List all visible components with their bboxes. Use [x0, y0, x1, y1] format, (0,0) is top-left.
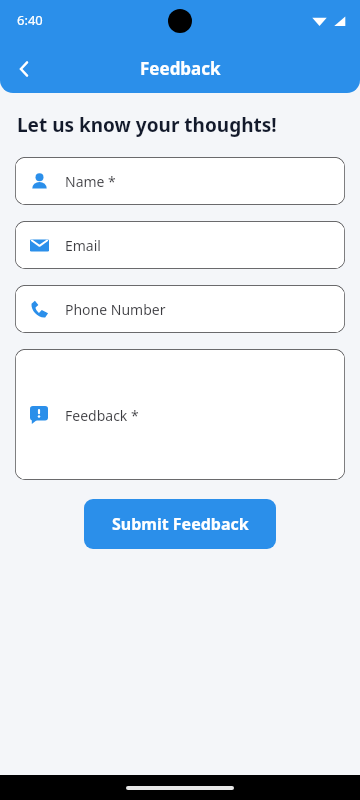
staticText: Let us know your thoughts!	[17, 112, 277, 138]
button[interactable]: Name *	[15, 157, 345, 205]
staticText: Name *	[65, 172, 116, 191]
button[interactable]: Back	[0, 45, 48, 93]
button[interactable]: Feedback *	[15, 349, 345, 480]
staticText: Phone Number	[65, 300, 166, 319]
button[interactable]: Phone Number	[15, 285, 345, 333]
button[interactable]: Email	[15, 221, 345, 269]
staticText: Submit Feedback	[112, 513, 249, 535]
staticText: 6:40	[17, 11, 43, 29]
staticText: Feedback *	[65, 406, 139, 425]
staticText: Email	[65, 236, 101, 255]
staticText: Feedback	[140, 57, 221, 80]
button[interactable]: Submit Feedback	[84, 499, 276, 549]
